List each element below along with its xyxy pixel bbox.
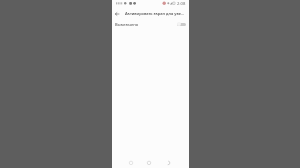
button[interactable]: Выключено (112, 19, 189, 29)
button[interactable]: Back (125, 155, 139, 168)
button[interactable]: Home (143, 155, 157, 168)
staticText: Активировать экран для уведом… (125, 11, 186, 16)
staticText: Выключено (115, 22, 139, 27)
button[interactable]: Back (111, 8, 122, 19)
button[interactable]: Recent apps (162, 155, 176, 168)
staticText: 2:08 (177, 1, 186, 7)
